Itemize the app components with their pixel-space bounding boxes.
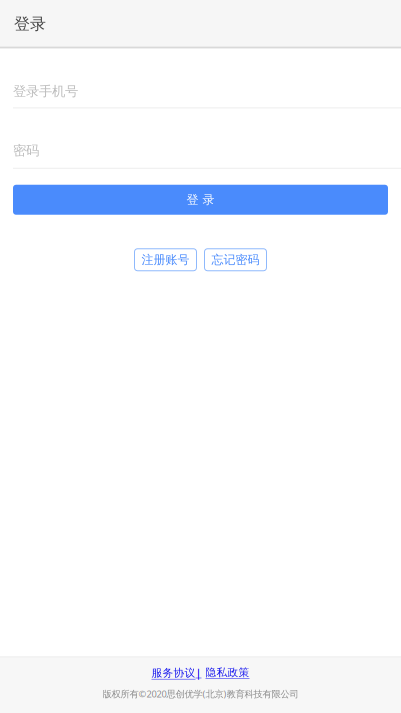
button[interactable]: 忘记密码	[204, 249, 266, 271]
button[interactable]: 注册账号	[134, 249, 196, 271]
staticText: 登录手机号	[13, 83, 78, 99]
staticText: 版权所有©2020思创优学(北京)教育科技有限公司	[102, 688, 298, 700]
button[interactable]: 密码	[0, 108, 401, 169]
staticText: 注册账号	[141, 252, 189, 267]
staticText: 登 录	[186, 192, 214, 207]
button[interactable]: 登 录	[13, 185, 388, 215]
staticText: 隐私政策	[205, 666, 249, 679]
staticText: 服务协议|	[151, 665, 201, 680]
staticText: 密码	[13, 142, 39, 159]
staticText: 登录	[14, 14, 46, 34]
button[interactable]: 登录手机号	[0, 49, 401, 108]
staticText: 忘记密码	[211, 252, 259, 267]
button[interactable]: 隐私政策	[205, 666, 249, 679]
button[interactable]: 服务协议|	[151, 665, 201, 680]
